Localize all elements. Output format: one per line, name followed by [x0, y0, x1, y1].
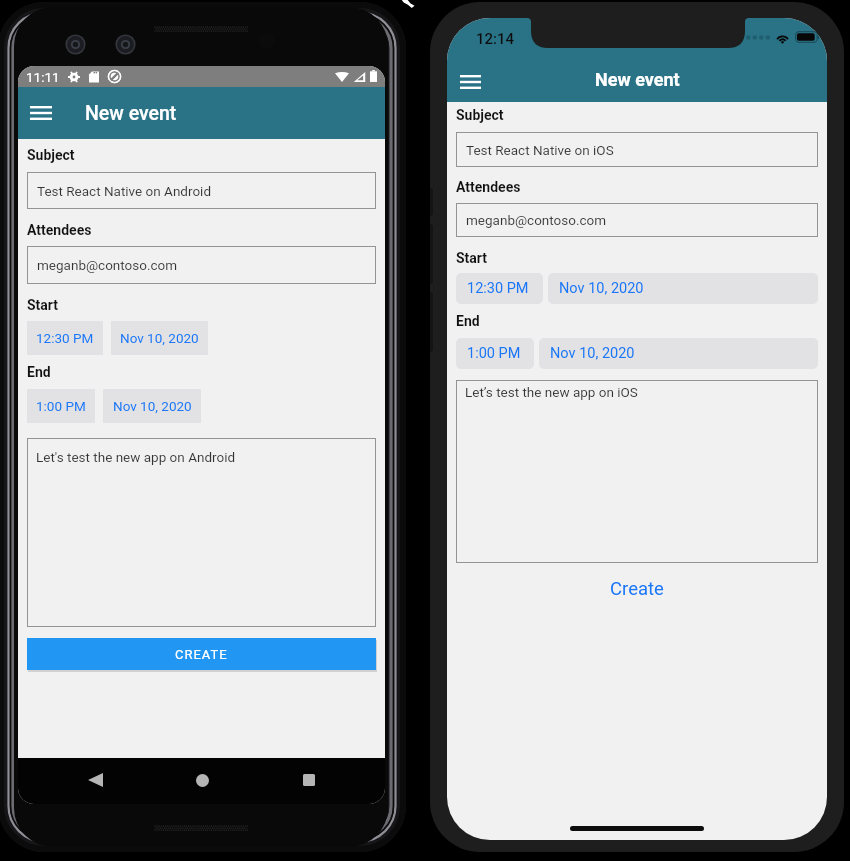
staticText: Nov 10, 2020	[550, 345, 635, 362]
button[interactable]: Nov 10, 2020	[111, 321, 208, 355]
button[interactable]: Nov 10, 2020	[548, 273, 818, 304]
button[interactable]: Nov 10, 2020	[103, 389, 201, 423]
staticText: Nov 10, 2020	[559, 280, 644, 297]
staticText: 12:14	[476, 30, 515, 48]
staticText: New event	[595, 69, 680, 90]
staticText: 12:30 PM	[467, 280, 529, 297]
staticText: Let’s test the new app on iOS	[465, 384, 638, 400]
button[interactable]: 12:30 PM	[27, 321, 103, 355]
staticText: meganb@contoso.com	[466, 212, 607, 228]
button[interactable]: Home	[187, 765, 217, 795]
button[interactable]: meganb@contoso.com	[456, 203, 818, 237]
button[interactable]: CREATE	[27, 638, 376, 670]
staticText: 1:00 PM	[467, 345, 521, 362]
button[interactable]: Recents	[294, 765, 324, 795]
button[interactable]: Nov 10, 2020	[539, 338, 818, 369]
staticText: End	[27, 364, 51, 380]
button[interactable]: Back	[80, 765, 110, 795]
staticText: Start	[27, 297, 59, 313]
button[interactable]: meganb@contoso.com	[27, 246, 376, 284]
staticText: Create	[610, 578, 664, 600]
staticText: Nov 10, 2020	[113, 398, 192, 414]
staticText: Attendees	[456, 179, 521, 195]
button[interactable]: Test React Native on iOS	[456, 132, 818, 167]
staticText: 12:30 PM	[36, 330, 94, 346]
staticText: CREATE	[175, 647, 228, 662]
button[interactable]: 1:00 PM	[27, 389, 95, 423]
staticText: Let's test the new app on Android	[36, 449, 236, 465]
button[interactable]: 12:30 PM	[456, 273, 543, 304]
staticText: Test React Native on iOS	[466, 142, 614, 158]
staticText: Attendees	[27, 222, 92, 238]
staticText: Start	[456, 250, 488, 266]
button[interactable]: Let's test the new app on Android	[27, 438, 376, 627]
button[interactable]: 1:00 PM	[456, 338, 534, 369]
staticText: Subject	[27, 147, 75, 163]
button[interactable]: Test React Native on Android	[27, 172, 376, 209]
button[interactable]: Let’s test the new app on iOS	[456, 380, 818, 563]
staticText: Nov 10, 2020	[120, 330, 199, 346]
button[interactable]: Menu	[451, 68, 489, 96]
button[interactable]: Create	[456, 576, 818, 602]
staticText: End	[456, 313, 480, 329]
button[interactable]: Menu	[21, 99, 61, 127]
staticText: Subject	[456, 107, 504, 123]
staticText: meganb@contoso.com	[37, 257, 178, 273]
staticText: Test React Native on Android	[37, 183, 211, 199]
staticText: New event	[85, 102, 177, 125]
staticText: 11:11	[26, 69, 60, 85]
staticText: 1:00 PM	[36, 398, 86, 414]
